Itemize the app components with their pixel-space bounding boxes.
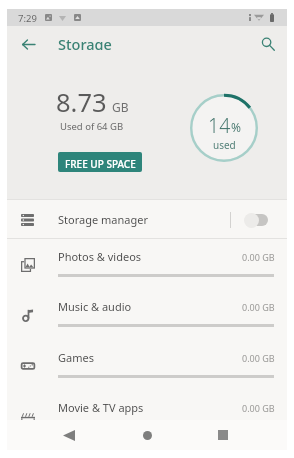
staticText: 7:29	[18, 12, 37, 25]
button[interactable]: Back	[48, 420, 90, 450]
button[interactable]: Back	[14, 30, 42, 58]
button[interactable]: Storage manager	[0, 200, 287, 239]
staticText: 0.00 GB	[242, 301, 275, 313]
staticText: Photos & videos	[58, 249, 142, 264]
staticText: Movie & TV apps	[58, 400, 144, 415]
staticText: 14	[208, 112, 231, 139]
button[interactable]: Photos & videos	[0, 238, 287, 276]
button[interactable]: Movie & TV apps	[0, 389, 287, 427]
staticText: GB	[112, 99, 129, 115]
button[interactable]: FREE UP SPACE	[58, 152, 142, 172]
staticText: FREE UP SPACE	[65, 157, 136, 171]
staticText: 0.00 GB	[242, 251, 275, 263]
staticText: %	[231, 119, 241, 135]
button[interactable]: Toggle storage manager	[238, 202, 278, 238]
button[interactable]: Search	[254, 30, 282, 58]
staticText: 8.73	[56, 85, 107, 120]
staticText: Storage manager	[58, 212, 148, 227]
button[interactable]: Music & audio	[0, 288, 287, 326]
button[interactable]: Home	[126, 420, 168, 450]
staticText: Music & audio	[58, 299, 132, 314]
staticText: Games	[58, 350, 94, 365]
button[interactable]: Games	[0, 339, 287, 377]
staticText: used	[213, 138, 236, 152]
staticText: Used of 64 GB	[60, 120, 124, 133]
button[interactable]: Recents	[202, 420, 244, 450]
staticText: 0.00 GB	[242, 402, 275, 414]
staticText: 0.00 GB	[242, 352, 275, 364]
staticText: Storage	[58, 34, 112, 50]
